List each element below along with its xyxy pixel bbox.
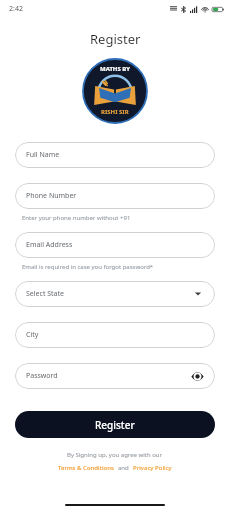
button[interactable]: Open state list — [192, 288, 204, 300]
staticText: Select State — [26, 289, 65, 299]
staticText: City — [26, 330, 39, 340]
staticText: Full Name — [26, 150, 60, 160]
button[interactable]: Phone Number — [15, 183, 215, 209]
staticText: Privacy Policy — [133, 464, 172, 472]
staticText: Enter your phone number without +91 — [22, 214, 131, 222]
staticText: Register — [90, 30, 141, 48]
staticText: MATHS BY — [100, 65, 131, 73]
button[interactable]: Privacy Policy — [133, 464, 172, 472]
staticText: RISHI SIR — [101, 108, 129, 116]
button[interactable]: Full Name — [15, 142, 215, 168]
staticText: Password — [26, 371, 58, 381]
button[interactable]: Password — [15, 363, 215, 389]
staticText: Email is required in case you forgot pas… — [22, 263, 154, 271]
staticText: Register — [95, 418, 135, 432]
staticText: 2:42 — [9, 4, 23, 14]
button[interactable]: Select State — [15, 281, 215, 307]
button[interactable]: City — [15, 322, 215, 348]
staticText: Phone Number — [26, 191, 77, 201]
staticText: and — [118, 464, 129, 472]
button[interactable]: Show password — [191, 370, 204, 383]
button[interactable]: Email Address — [15, 232, 215, 258]
button[interactable]: Terms & Conditions — [58, 464, 114, 472]
staticText: By Signing up, you agree with our — [67, 451, 163, 459]
button[interactable]: Register — [15, 411, 215, 438]
staticText: Terms & Conditions — [58, 464, 114, 472]
staticText: Email Address — [26, 240, 73, 250]
